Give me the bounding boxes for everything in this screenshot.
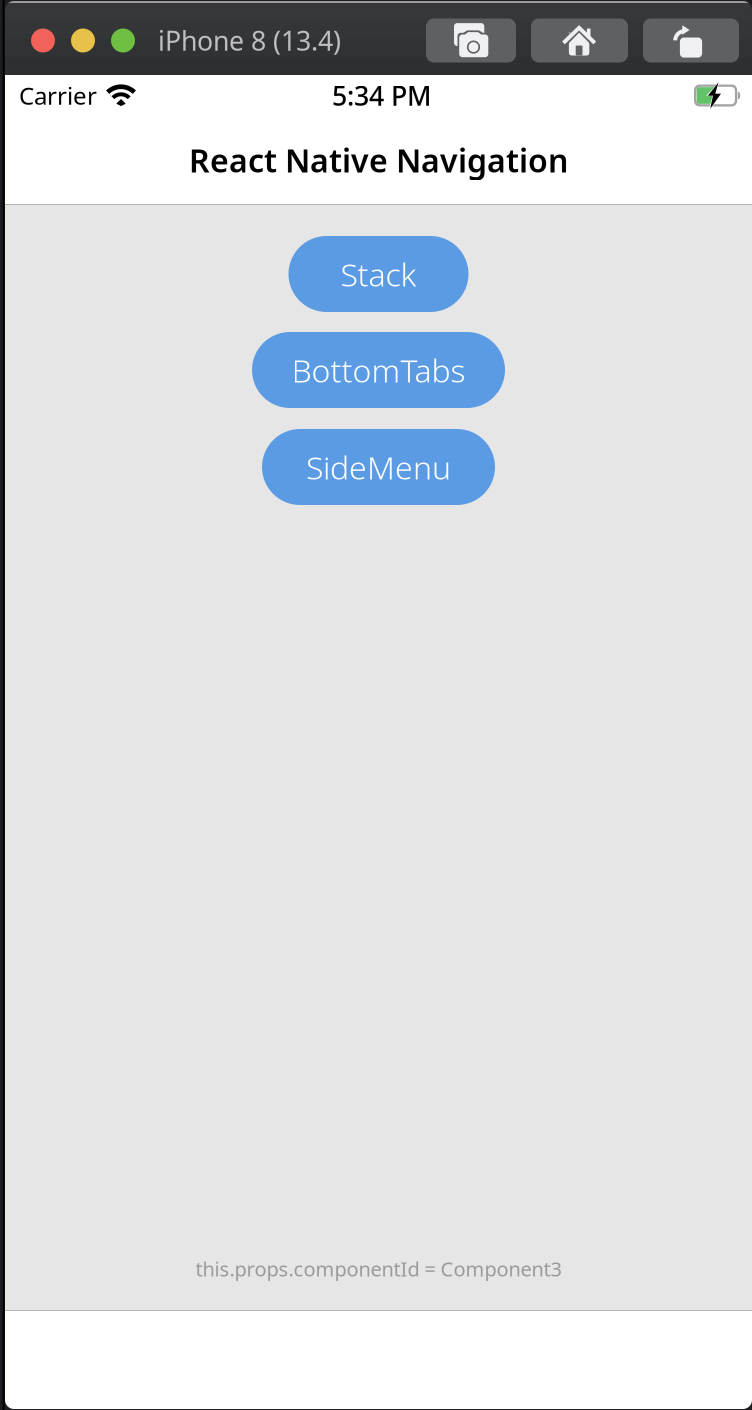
staticText: 5:34 PM [332, 78, 431, 113]
button[interactable]: Minimize [71, 28, 95, 52]
staticText: Stack [340, 253, 416, 295]
button[interactable]: Stack [288, 236, 468, 312]
button[interactable]: Home [531, 18, 628, 62]
button[interactable]: Rotate device [643, 18, 739, 62]
button[interactable]: Close [31, 28, 55, 52]
button[interactable]: BottomTabs [252, 332, 505, 408]
staticText: React Native Navigation [189, 139, 568, 181]
staticText: SideMenu [306, 446, 451, 488]
staticText: Carrier [19, 80, 97, 111]
button[interactable]: Zoom [111, 28, 135, 52]
staticText: iPhone 8 (13.4) [158, 23, 341, 58]
staticText: BottomTabs [291, 349, 465, 391]
button[interactable]: SideMenu [262, 429, 495, 505]
staticText: this.props.componentId = Component3 [195, 1255, 561, 1282]
button[interactable]: Screenshot [426, 18, 516, 62]
